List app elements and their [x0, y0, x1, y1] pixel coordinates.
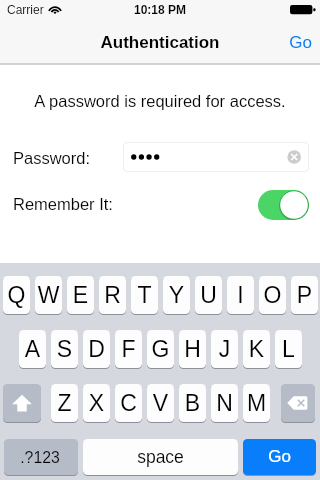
button[interactable]: I: [227, 276, 254, 315]
staticText: E: [67, 282, 94, 308]
staticText: T: [131, 282, 158, 308]
button[interactable]: H: [179, 330, 206, 369]
staticText: Go: [243, 447, 316, 466]
staticText: C: [115, 390, 142, 416]
button[interactable]: K: [243, 330, 270, 369]
staticText: U: [195, 282, 222, 308]
button[interactable]: X: [83, 384, 110, 423]
button[interactable]: L: [275, 330, 302, 369]
other: Wi-Fi: [48, 5, 62, 15]
button[interactable]: G: [147, 330, 174, 369]
staticText: Y: [163, 282, 190, 308]
button[interactable]: R: [99, 276, 126, 315]
button[interactable]: A: [19, 330, 46, 369]
staticText: N: [211, 390, 238, 416]
staticText: Password:: [13, 149, 91, 167]
staticText: Q: [3, 282, 30, 308]
button[interactable]: P: [291, 276, 318, 315]
button[interactable]: D: [83, 330, 110, 369]
button[interactable]: Y: [163, 276, 190, 315]
button[interactable]: Q: [3, 276, 30, 315]
staticText: space: [83, 447, 238, 467]
staticText: .?123: [4, 449, 77, 467]
button[interactable]: U: [195, 276, 222, 315]
staticText: F: [115, 336, 142, 362]
staticText: W: [35, 282, 62, 308]
button[interactable]: N: [211, 384, 238, 423]
staticText: Z: [51, 390, 78, 416]
staticText: A: [19, 336, 46, 362]
button[interactable]: S: [51, 330, 78, 369]
button[interactable]: M: [243, 384, 270, 423]
staticText: L: [275, 336, 302, 362]
staticText: D: [83, 336, 110, 362]
button[interactable]: Z: [51, 384, 78, 423]
button[interactable]: E: [67, 276, 94, 315]
staticText: I: [227, 282, 254, 308]
staticText: J: [211, 336, 238, 362]
button[interactable]: Go: [279, 20, 320, 64]
staticText: X: [83, 390, 110, 416]
staticText: 10:18 PM: [0, 3, 320, 16]
staticText: Go: [280, 33, 320, 52]
staticText: A password is required for access.: [0, 92, 320, 110]
button[interactable]: T: [131, 276, 158, 315]
button[interactable]: V: [147, 384, 174, 423]
staticText: K: [243, 336, 270, 362]
button[interactable]: F: [115, 330, 142, 369]
button[interactable]: O: [259, 276, 286, 315]
staticText: S: [51, 336, 78, 362]
button[interactable]: J: [211, 330, 238, 369]
button[interactable]: B: [179, 384, 206, 423]
other: Battery: [290, 5, 315, 15]
staticText: Authentication: [0, 33, 320, 52]
button[interactable]: W: [35, 276, 62, 315]
staticText: Carrier: [7, 3, 44, 16]
staticText: M: [243, 390, 270, 416]
staticText: R: [99, 282, 126, 308]
button[interactable]: space: [83, 439, 238, 476]
button[interactable]: C: [115, 384, 142, 423]
button[interactable]: Remember It toggle: [258, 190, 309, 220]
staticText: B: [179, 390, 206, 416]
button[interactable]: .?123: [4, 439, 78, 476]
staticText: G: [147, 336, 174, 362]
button[interactable]: Go: [243, 439, 316, 476]
staticText: P: [291, 282, 318, 308]
button[interactable]: Shift: [3, 384, 41, 423]
staticText: V: [147, 390, 174, 416]
button[interactable]: Backspace: [281, 384, 315, 423]
button[interactable]: Password field: [123, 142, 309, 172]
staticText: Remember It:: [13, 195, 113, 213]
staticText: H: [179, 336, 206, 362]
staticText: O: [259, 282, 286, 308]
